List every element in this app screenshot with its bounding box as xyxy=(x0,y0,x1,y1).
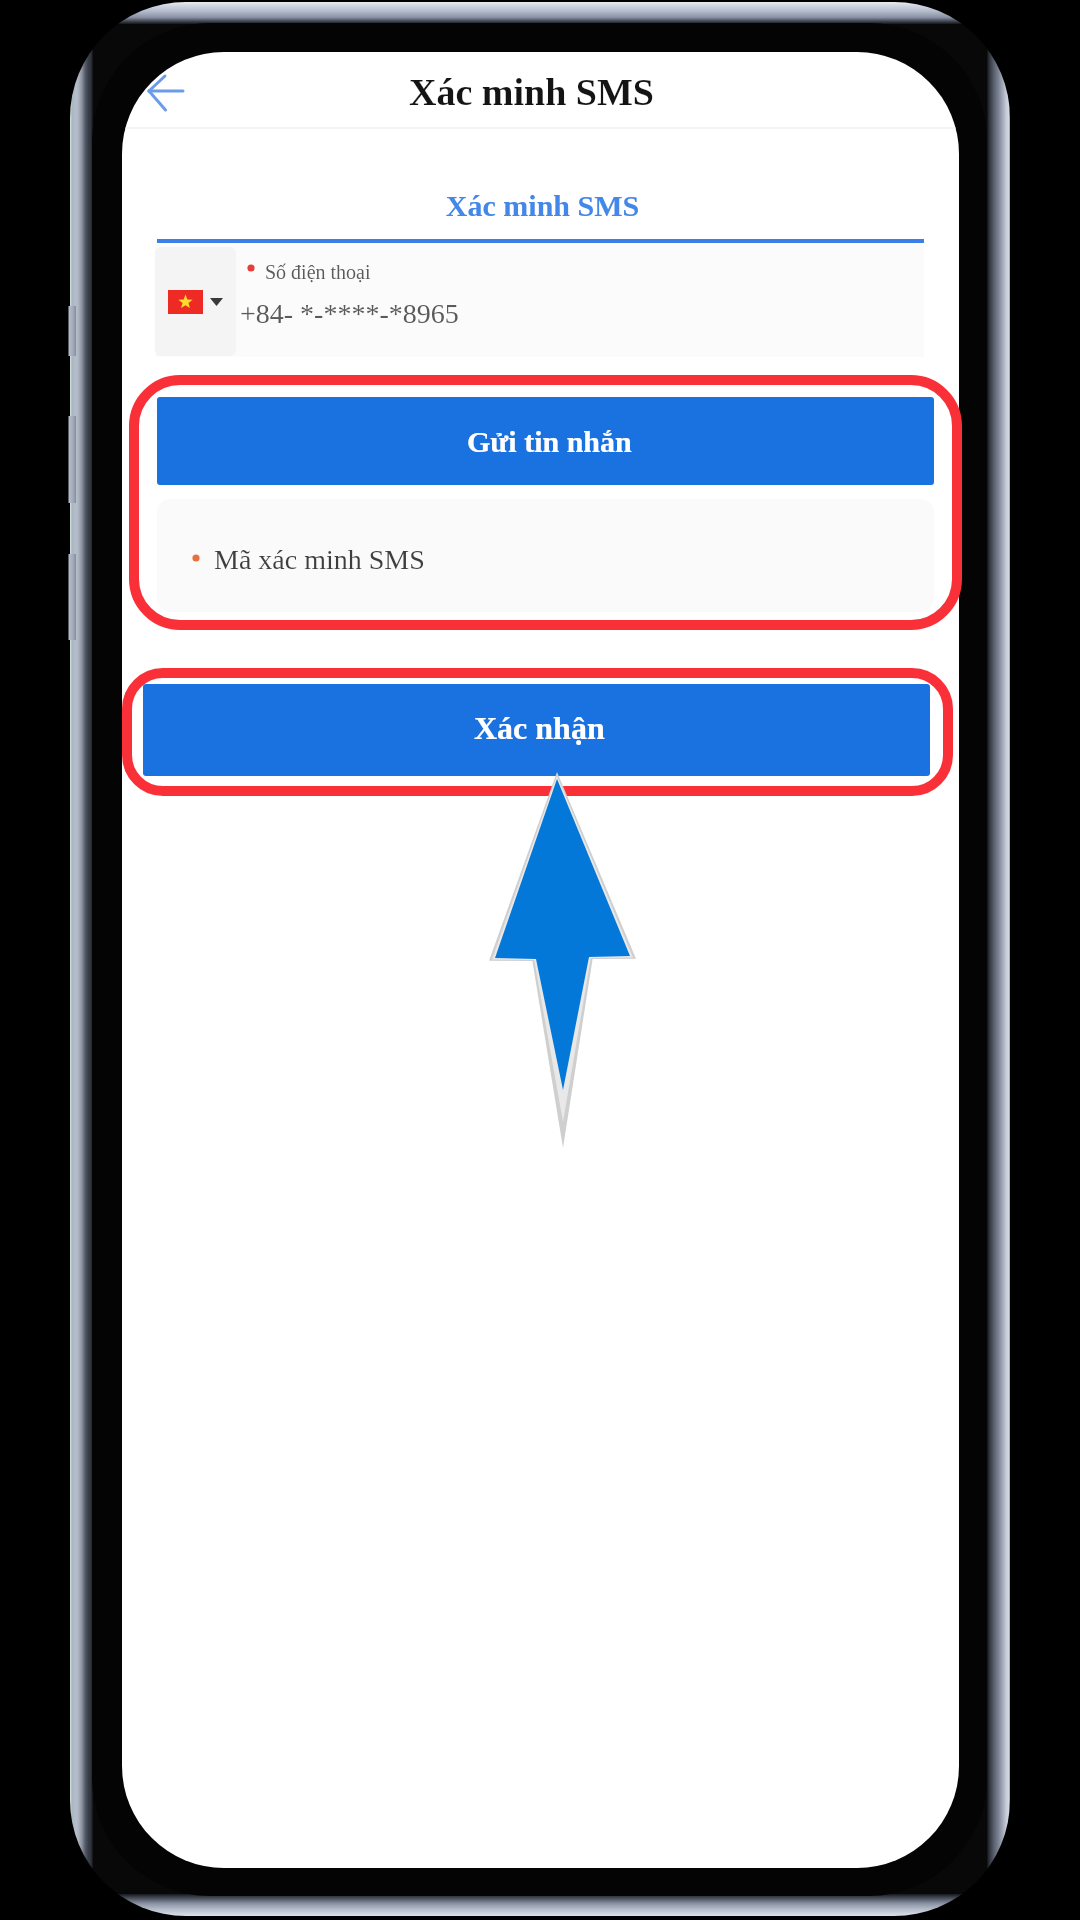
staticText: Xác minh SMS xyxy=(124,189,959,222)
button[interactable]: Back xyxy=(140,66,194,118)
button[interactable]: Gửi tin nhắn xyxy=(157,397,934,485)
staticText: Mã xác minh SMS xyxy=(214,544,425,575)
staticText: Xác minh SMS xyxy=(122,71,950,113)
staticText: Gửi tin nhắn xyxy=(467,425,632,458)
button[interactable] xyxy=(155,247,236,356)
staticText: +84- *-****-*8965 xyxy=(240,298,459,329)
button[interactable]: Mã xác minh SMS xyxy=(157,499,934,612)
staticText: Số điện thoại xyxy=(265,261,371,283)
button[interactable]: Xác nhận xyxy=(143,684,930,776)
staticText: Xác nhận xyxy=(474,710,605,745)
